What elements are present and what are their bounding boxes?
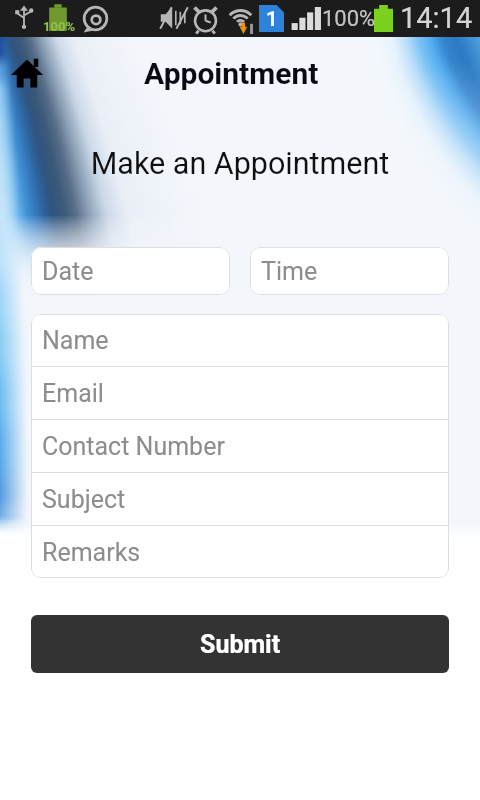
staticText: Name bbox=[42, 326, 109, 355]
button[interactable]: Home bbox=[0, 46, 54, 100]
staticText: 1 bbox=[266, 7, 278, 30]
staticText: 14:14 bbox=[400, 1, 473, 35]
staticText: Submit bbox=[200, 630, 281, 659]
button[interactable]: Contact Number bbox=[31, 420, 449, 472]
staticText: Make an Appointment bbox=[0, 146, 480, 182]
staticText: Date bbox=[42, 257, 94, 286]
staticText: Subject bbox=[42, 485, 126, 514]
button[interactable]: Name bbox=[31, 314, 449, 366]
button[interactable]: Time bbox=[250, 247, 449, 295]
button[interactable]: Subject bbox=[31, 473, 449, 525]
button[interactable]: Email bbox=[31, 367, 449, 419]
staticText: 100% bbox=[43, 19, 75, 34]
staticText: Appointment bbox=[144, 56, 319, 91]
button[interactable]: Remarks bbox=[31, 526, 449, 578]
staticText: Remarks bbox=[42, 538, 141, 567]
button[interactable]: Submit bbox=[31, 615, 449, 673]
button[interactable]: Date bbox=[31, 247, 230, 295]
staticText: Contact Number bbox=[42, 432, 225, 461]
staticText: 100% bbox=[322, 6, 376, 32]
staticText: Email bbox=[42, 379, 104, 408]
staticText: Time bbox=[261, 257, 318, 286]
